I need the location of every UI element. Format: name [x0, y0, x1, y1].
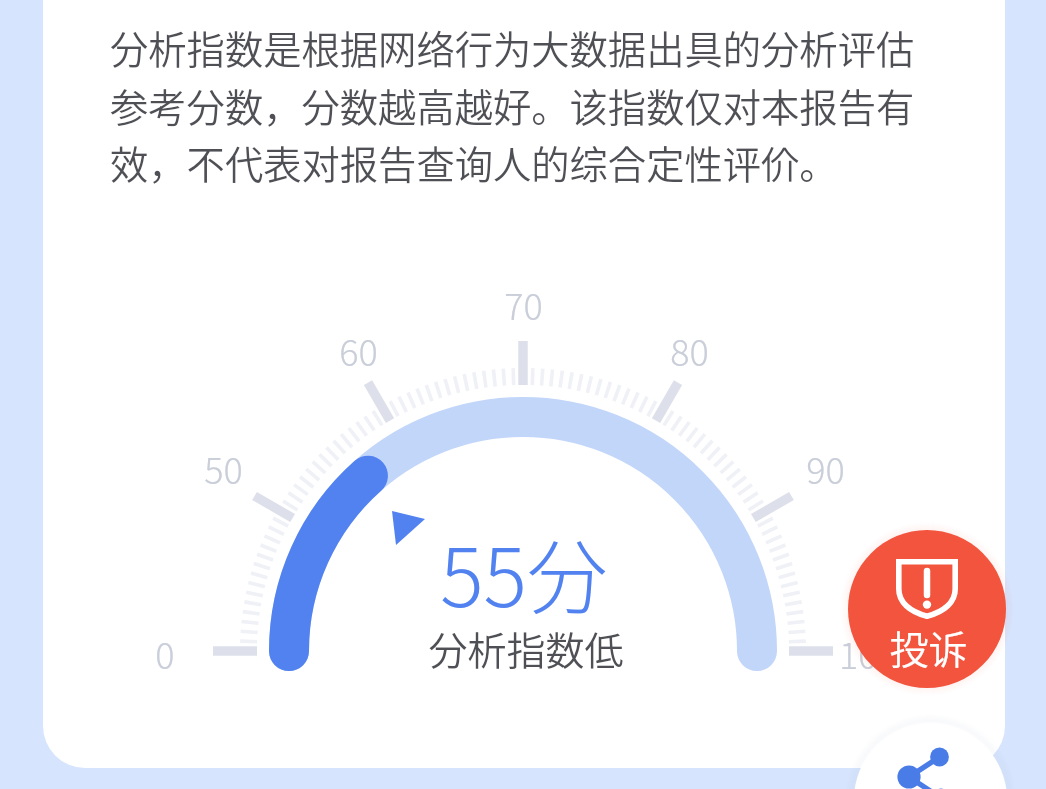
staticText: 70: [504, 278, 543, 330]
staticText: 50: [204, 442, 243, 494]
staticText: 90: [806, 442, 845, 494]
button[interactable]: Share: [854, 723, 1007, 789]
staticText: 60: [339, 324, 378, 376]
staticText: 55分: [440, 513, 608, 630]
staticText: 投诉: [889, 619, 968, 675]
button[interactable]: 投诉 Complaint: [848, 530, 1006, 688]
staticText: 80: [670, 324, 709, 376]
staticText: 分析指数是根据网络行为大数据出具的分析评估参考分数，分数越高越好。该指数仅对本报…: [110, 20, 920, 200]
staticText: 分析指数低: [428, 620, 624, 676]
staticText: 100: [839, 627, 897, 679]
staticText: 0: [155, 627, 175, 679]
